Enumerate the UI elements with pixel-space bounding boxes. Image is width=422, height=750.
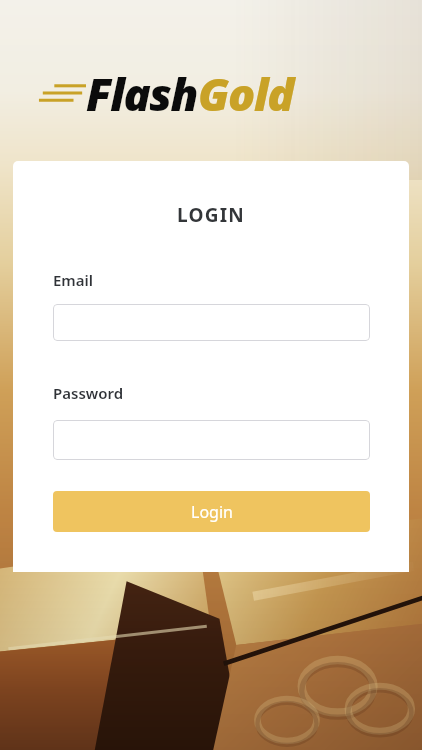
staticText: Gold: [198, 63, 293, 124]
staticText: LOGIN: [13, 202, 409, 228]
staticText: Flash: [86, 63, 198, 124]
button[interactable]: Email input field: [53, 304, 370, 341]
staticText: Email: [53, 270, 94, 290]
staticText: Login: [191, 501, 233, 523]
button[interactable]: Login: [53, 491, 370, 532]
button[interactable]: Password input field: [53, 420, 370, 460]
staticText: Password: [53, 383, 124, 403]
